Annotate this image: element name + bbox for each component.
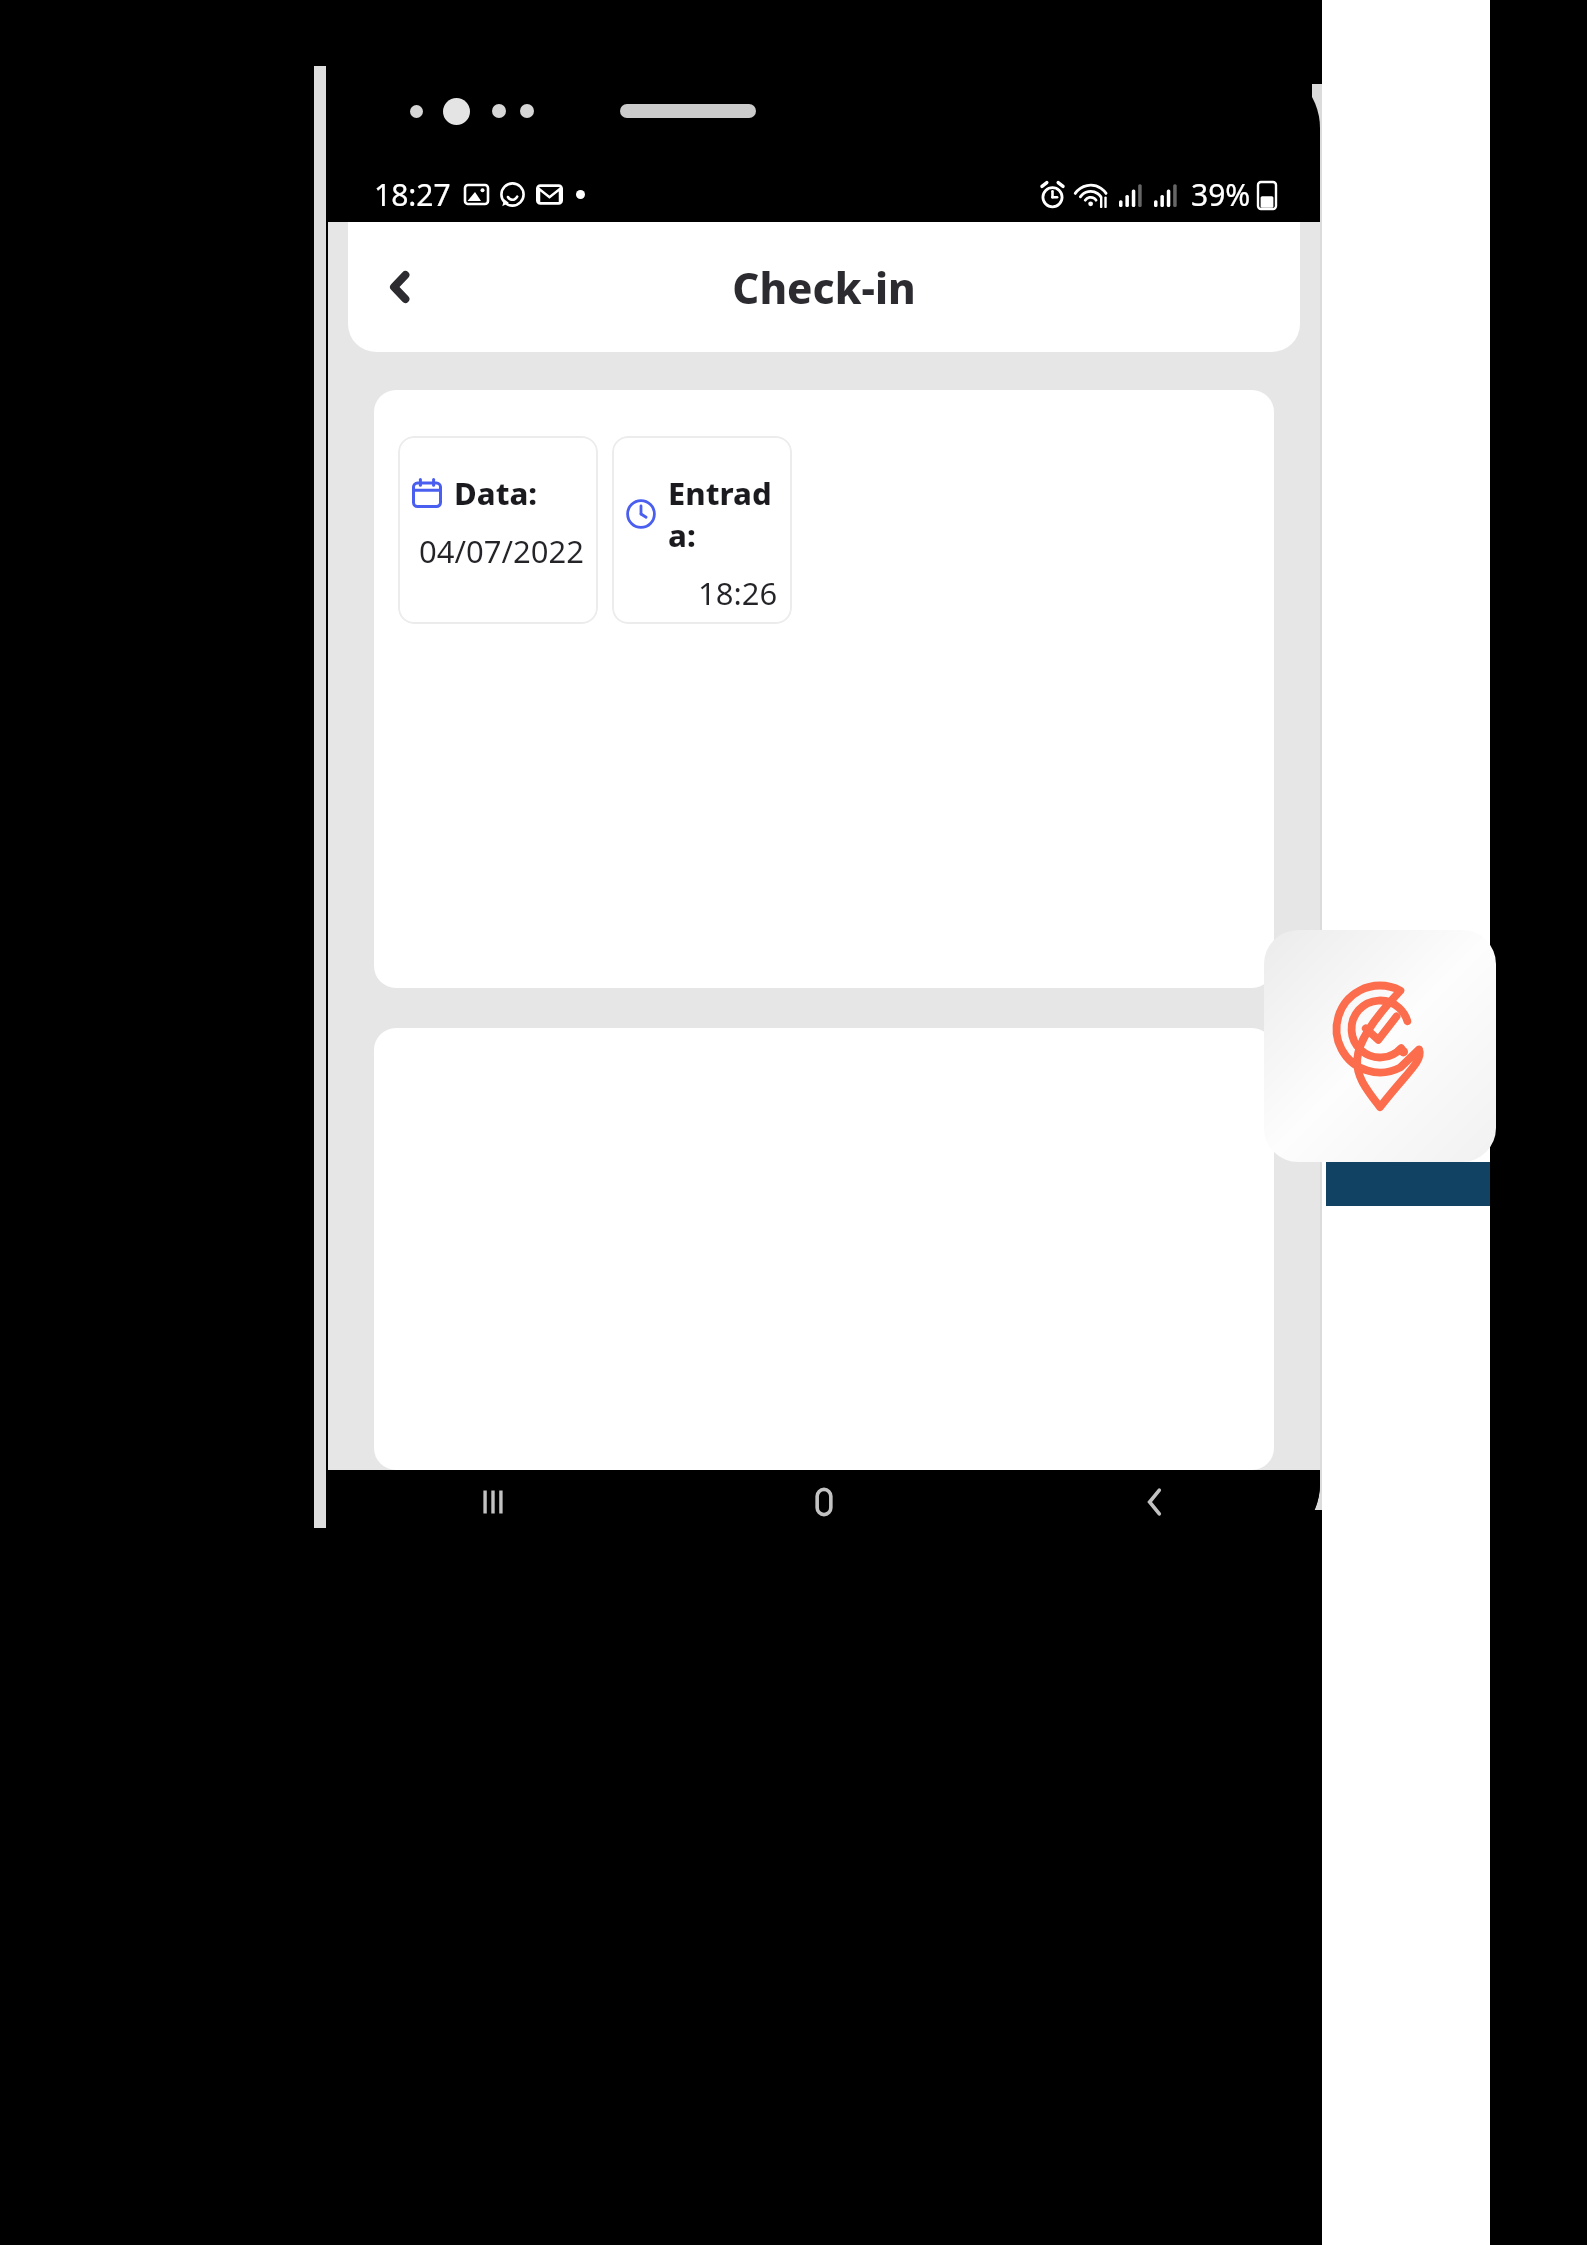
staticText: 04/07/2022 <box>419 530 584 572</box>
staticText: 39% <box>1191 174 1251 215</box>
staticText: Data: <box>454 472 538 514</box>
button[interactable]: Home <box>658 1470 989 1548</box>
button[interactable]: Check-in location <box>1264 930 1496 1162</box>
staticText: Entrada: <box>668 472 778 556</box>
button[interactable]: Recents <box>328 1470 658 1548</box>
button[interactable]: Back <box>989 1470 1320 1548</box>
button[interactable]: Back <box>368 255 432 319</box>
button[interactable]: Entrada: <box>612 436 792 624</box>
staticText: Check-in <box>732 259 916 316</box>
staticText: 18:26 <box>698 572 778 614</box>
staticText: 18:27 <box>374 174 451 215</box>
button[interactable]: Data: <box>398 436 598 624</box>
